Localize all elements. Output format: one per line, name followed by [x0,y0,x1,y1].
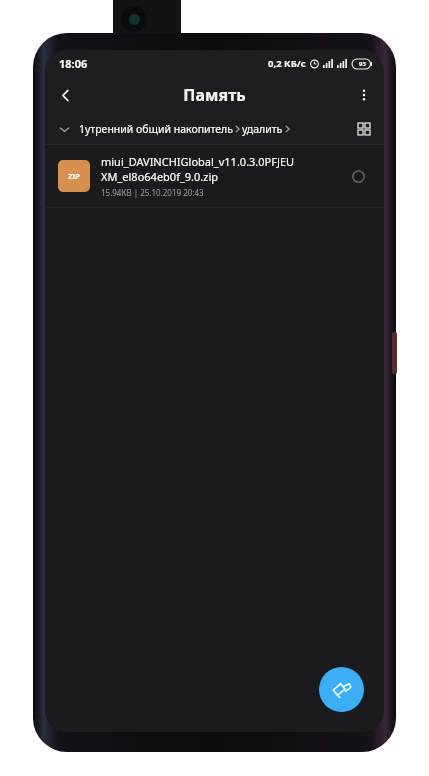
button[interactable]: Grid view [353,118,375,140]
staticText: XM_el8o64eb0f_9.0.zip [101,169,219,184]
staticText: 15.94KB | 25.10.2019 20:43 [101,187,204,198]
staticText: 18:06 [59,56,88,71]
button[interactable]: Expand [54,119,74,139]
button[interactable]: 1утренний общий накопитель [79,122,353,136]
staticText: Память [183,84,246,106]
button[interactable]: Select file [345,163,371,189]
staticText: ZIP [68,171,80,181]
staticText: 0,2 КБ/с [268,57,306,70]
staticText: 1утренний общий накопитель [79,122,233,136]
button[interactable]: More options [344,76,384,114]
staticText: 93 [359,60,366,68]
button[interactable]: Back [45,76,85,114]
staticText: miui_DAVINCHIGlobal_v11.0.3.0PFJEU [101,154,295,169]
staticText: удалить [242,122,283,136]
button[interactable]: Clean up [319,667,364,712]
button[interactable]: ZIP [45,145,384,207]
